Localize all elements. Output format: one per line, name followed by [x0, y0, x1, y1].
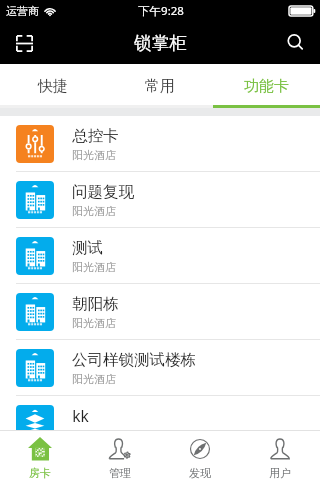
button[interactable]: 管理 [80, 431, 160, 480]
button[interactable]: 快捷 [0, 64, 106, 105]
button[interactable]: Search [280, 27, 312, 59]
staticText: 快捷 [38, 77, 68, 96]
staticText: 测试 [72, 238, 103, 258]
staticText: kk [72, 405, 89, 426]
staticText: 功能卡 [244, 77, 289, 96]
staticText: 朝阳栋 [72, 294, 119, 314]
staticText: 锁掌柜 [134, 32, 187, 54]
button[interactable]: 问题复现 [0, 172, 320, 228]
staticText: 公司样锁测试楼栋 [72, 350, 196, 370]
button[interactable]: 用户 [240, 431, 320, 480]
button[interactable]: 常用 [106, 64, 213, 105]
staticText: 下午9:28 [138, 3, 184, 19]
button[interactable]: 测试 [0, 228, 320, 284]
staticText: 问题复现 [72, 182, 134, 202]
button[interactable]: 发现 [160, 431, 240, 480]
button[interactable]: 功能卡 [213, 64, 320, 105]
button[interactable]: 公司样锁测试楼栋 [0, 340, 320, 396]
staticText: 阳光酒店 [72, 204, 116, 218]
staticText: 阳光酒店 [72, 316, 116, 330]
staticText: 用户 [269, 466, 291, 480]
button[interactable]: Scan [8, 27, 40, 59]
button[interactable]: 总控卡 [0, 116, 320, 172]
staticText: 发现 [189, 466, 211, 480]
button[interactable]: 房卡 [0, 431, 80, 480]
staticText: 常用 [145, 77, 175, 96]
staticText: 阳光酒店 [72, 260, 116, 274]
staticText: 管理 [109, 466, 131, 480]
staticText: 总控卡 [72, 126, 119, 146]
button[interactable]: kk [0, 396, 320, 430]
staticText: 阳光酒店 [72, 372, 116, 386]
staticText: 运营商 [6, 4, 39, 18]
button[interactable]: 朝阳栋 [0, 284, 320, 340]
staticText: 房卡 [29, 466, 51, 480]
staticText: 阳光酒店 [72, 148, 116, 162]
